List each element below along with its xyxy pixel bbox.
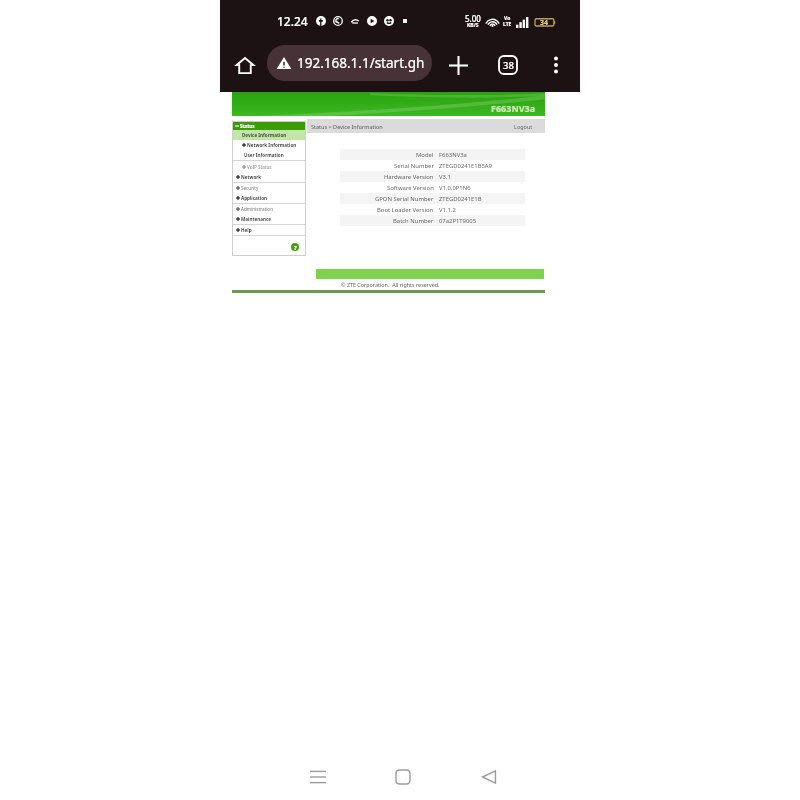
button[interactable]: New tab [440, 38, 476, 92]
staticText: Help [241, 227, 252, 233]
button[interactable]: Tabs [490, 38, 526, 92]
button[interactable]: User Information [232, 150, 306, 160]
staticText: V1.1.2 [439, 206, 456, 214]
button[interactable]: Administration [232, 204, 306, 214]
staticText: Network Information [247, 142, 297, 148]
staticText: Model [416, 151, 434, 159]
button[interactable]: Logout [514, 123, 533, 130]
staticText: © ZTE Corporation. All rights reserved. [341, 281, 440, 288]
button[interactable]: Device Information [232, 130, 306, 140]
staticText: F663NV3a [439, 151, 467, 159]
staticText: Boot Loader Version [377, 206, 434, 214]
staticText: 38 [503, 59, 514, 72]
button[interactable]: More options [538, 38, 574, 92]
staticText: Vo [504, 15, 511, 22]
staticText: GPON Serial Number [375, 195, 434, 203]
button[interactable]: Network [232, 172, 306, 182]
button[interactable]: 192.168.1.1/start.gh [267, 45, 432, 81]
button[interactable]: Application [232, 193, 306, 203]
staticText: ? [294, 244, 297, 251]
staticText: V1.0.0P1N6 [439, 184, 471, 192]
button[interactable]: Back [466, 755, 511, 800]
staticText: Serial Number [394, 162, 434, 170]
staticText: Security [241, 185, 259, 191]
button[interactable]: Home [229, 38, 260, 92]
staticText: Software Version [387, 184, 434, 192]
button[interactable]: Security [232, 183, 306, 193]
staticText: Maintenance [241, 216, 272, 222]
button[interactable]: Home [381, 755, 426, 800]
staticText: 192.168.1.1/start.gh [297, 54, 425, 72]
staticText: Application [241, 195, 268, 201]
staticText: Device Information [242, 132, 287, 138]
staticText: 5.00 [465, 13, 481, 24]
button[interactable]: Status [232, 122, 306, 130]
staticText: ZTEGD0241E1B [439, 195, 482, 203]
button[interactable]: VoIP Status [232, 161, 306, 172]
staticText: VoIP Status [247, 164, 272, 170]
staticText: Network [241, 174, 262, 180]
staticText: V3.1 [439, 173, 451, 181]
staticText: ZTEGD0241E1B5A9 [439, 162, 492, 170]
staticText: Hardware Version [384, 173, 434, 181]
staticText: 34 [540, 18, 549, 28]
staticText: Batch Number [393, 217, 434, 225]
button[interactable]: Help [291, 243, 299, 251]
staticText: LTE [503, 21, 512, 28]
staticText: 12.24 [277, 13, 308, 29]
staticText: 07a2P1T9005 [439, 217, 477, 225]
button[interactable]: Network Information [232, 140, 306, 150]
staticText: Administration [241, 206, 273, 212]
staticText: KB/S [467, 22, 479, 29]
staticText: F663NV3a [491, 102, 536, 114]
button[interactable]: Help [232, 225, 306, 235]
staticText: Status > Device Information [311, 123, 383, 130]
staticText: Status [240, 123, 255, 129]
button[interactable]: Maintenance [232, 214, 306, 224]
staticText: User Information [244, 152, 284, 158]
button[interactable]: Recent apps [295, 755, 340, 800]
